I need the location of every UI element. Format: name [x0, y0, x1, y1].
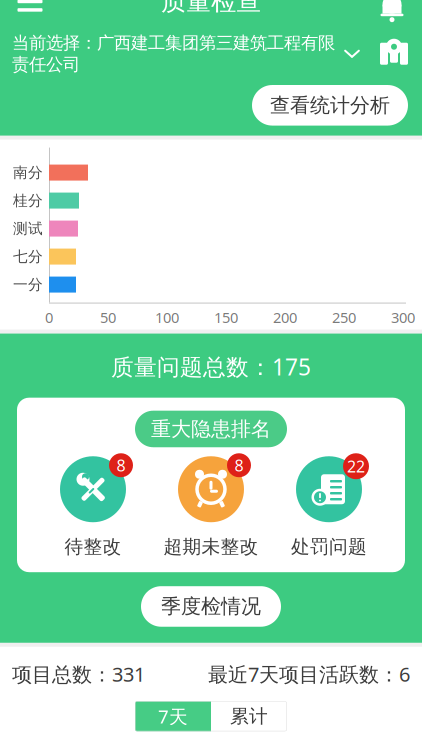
staticText: 季度检情况 [161, 594, 261, 619]
staticText: 南分 [13, 164, 43, 182]
button[interactable]: 8 [152, 453, 270, 558]
button[interactable]: 重大隐患排名 [135, 411, 287, 447]
staticText: 待整改 [64, 535, 121, 558]
staticText: 一分 [13, 276, 43, 294]
staticText: 200 [273, 308, 297, 327]
staticText: 最近7天项目活跃数：6 [208, 661, 410, 687]
staticText: 处罚问题 [291, 535, 367, 558]
staticText: 项目总数：331 [12, 661, 145, 687]
staticText: 查看统计分析 [270, 93, 390, 118]
button[interactable]: 菜单 [5, 0, 55, 24]
staticText: 测试 [13, 220, 43, 238]
staticText: 当前选择：广西建工集团第三建筑工程有限责任公司 [12, 32, 335, 75]
button[interactable]: 通知 [367, 0, 417, 24]
staticText: 22 [347, 456, 365, 477]
staticText: 300 [391, 308, 415, 327]
staticText: 150 [214, 308, 238, 327]
staticText: 桂分 [13, 192, 43, 210]
staticText: 7天 [158, 704, 188, 729]
staticText: 8 [234, 455, 243, 476]
staticText: 250 [332, 308, 356, 327]
button[interactable]: 季度检情况 [141, 586, 281, 627]
staticText: 质量问题总数：175 [111, 352, 311, 382]
button[interactable]: 8 [34, 453, 152, 558]
staticText: 8 [116, 455, 125, 476]
staticText: 七分 [13, 248, 43, 266]
button[interactable]: 当前选择：广西建工集团第三建筑工程有限责任公司 [12, 24, 361, 83]
button[interactable]: 22 [270, 453, 388, 558]
staticText: 0 [45, 308, 53, 327]
button[interactable]: 累计 [211, 701, 287, 731]
staticText: 50 [100, 308, 116, 327]
staticText: 100 [155, 308, 179, 327]
button[interactable]: 7天 [135, 701, 211, 731]
button[interactable]: 查看统计分析 [252, 85, 408, 126]
staticText: 重大隐患排名 [151, 417, 271, 441]
staticText: 超期未整改 [163, 535, 258, 558]
staticText: 质量检查 [161, 0, 261, 17]
button[interactable]: 地图 [372, 36, 416, 72]
staticText: 累计 [230, 705, 268, 728]
